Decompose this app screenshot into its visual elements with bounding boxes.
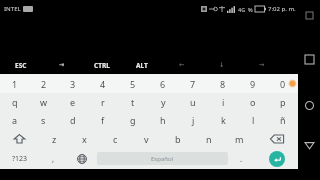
button[interactable]: q [0, 93, 29, 111]
staticText: c [113, 133, 118, 145]
button[interactable]: Backspace [255, 129, 298, 148]
button[interactable]: ↓ [202, 56, 242, 74]
button[interactable]: 5 [118, 74, 148, 93]
button[interactable]: . [228, 148, 255, 169]
button[interactable]: m [224, 129, 255, 148]
staticText: i [222, 96, 225, 108]
staticText: b [175, 133, 181, 145]
staticText: h [160, 114, 166, 126]
staticText: 3 [70, 78, 76, 90]
button[interactable]: g [118, 111, 148, 129]
button[interactable]: 9 [238, 74, 268, 93]
staticText: p [280, 96, 286, 108]
staticText: a [12, 114, 18, 126]
button[interactable]: u [178, 93, 208, 111]
button[interactable]: ESC [0, 56, 41, 74]
button[interactable]: r [88, 93, 118, 111]
staticText: f [101, 114, 105, 126]
staticText: u [190, 96, 196, 108]
staticText: ESC [15, 61, 27, 70]
staticText: y [161, 96, 166, 108]
staticText: z [52, 133, 57, 145]
button[interactable]: ⇥ [41, 56, 82, 74]
button[interactable]: b [162, 129, 193, 148]
staticText: . [240, 153, 243, 164]
staticText: r [101, 96, 105, 108]
staticText: INTEL [4, 5, 21, 13]
staticText: ↓ [219, 61, 225, 69]
staticText: Español [151, 155, 174, 163]
staticText: CTRL [94, 61, 110, 70]
button[interactable]: → [242, 56, 282, 74]
button[interactable]: ñ [268, 111, 298, 129]
staticText: w [40, 96, 48, 108]
button[interactable]: Back [300, 136, 318, 154]
button[interactable]: n [193, 129, 224, 148]
button[interactable]: e [58, 93, 88, 111]
staticText: ← [179, 61, 185, 69]
button[interactable]: a [0, 111, 29, 129]
button[interactable]: k [208, 111, 238, 129]
button[interactable]: Español [97, 152, 228, 165]
staticText: 1 [12, 78, 18, 90]
button[interactable]: 0 [268, 74, 298, 93]
staticText: 2 [41, 78, 47, 90]
button[interactable]: CTRL [82, 56, 122, 74]
button[interactable]: j [178, 111, 208, 129]
staticText: n [206, 133, 212, 145]
button[interactable]: 7 [178, 74, 208, 93]
button[interactable]: f [88, 111, 118, 129]
staticText: ALT [136, 61, 148, 70]
button[interactable]: , [40, 148, 67, 169]
button[interactable]: Recent apps [300, 50, 318, 68]
button[interactable]: c [100, 129, 131, 148]
staticText: k [221, 114, 226, 126]
staticText: 4 [100, 78, 106, 90]
staticText: ?123 [12, 154, 28, 164]
staticText: 7 [190, 78, 196, 90]
button[interactable]: ?123 [0, 148, 40, 169]
button[interactable]: x [69, 129, 100, 148]
button[interactable]: 4 [88, 74, 118, 93]
button[interactable]: 2 [29, 74, 58, 93]
staticText: 4G [238, 6, 246, 13]
button[interactable]: ALT [122, 56, 162, 74]
button[interactable]: p [268, 93, 298, 111]
button[interactable]: Enter [255, 148, 298, 169]
button[interactable]: 1 [0, 74, 29, 93]
button[interactable]: v [131, 129, 162, 148]
button[interactable]: Keyboard [302, 8, 316, 22]
button[interactable]: o [238, 93, 268, 111]
staticText: 8 [220, 78, 226, 90]
staticText: ñ [280, 114, 286, 126]
staticText: s [41, 114, 46, 126]
button[interactable]: h [148, 111, 178, 129]
button[interactable]: Shift [0, 129, 39, 148]
button[interactable]: d [58, 111, 88, 129]
button[interactable]: 6 [148, 74, 178, 93]
button[interactable]: w [29, 93, 58, 111]
button[interactable]: t [118, 93, 148, 111]
button[interactable]: y [148, 93, 178, 111]
staticText: l [252, 114, 255, 126]
staticText: m [235, 133, 244, 145]
staticText: 9 [250, 78, 256, 90]
button[interactable]: 8 [208, 74, 238, 93]
button[interactable]: Change keyboard language [67, 148, 97, 169]
staticText: 7:02 p. m. [268, 5, 296, 13]
staticText: o [250, 96, 256, 108]
staticText: x [82, 133, 87, 145]
button[interactable]: ← [162, 56, 202, 74]
button[interactable]: Home [300, 96, 318, 114]
staticText: ⇥ [59, 61, 65, 69]
staticText: 5 [130, 78, 136, 90]
button[interactable]: s [29, 111, 58, 129]
staticText: t [131, 96, 135, 108]
button[interactable]: i [208, 93, 238, 111]
button[interactable]: z [39, 129, 69, 148]
staticText: 6 [160, 78, 166, 90]
button[interactable]: l [238, 111, 268, 129]
button[interactable]: 3 [58, 74, 88, 93]
staticText: 0 [280, 78, 286, 90]
staticText: d [70, 114, 76, 126]
